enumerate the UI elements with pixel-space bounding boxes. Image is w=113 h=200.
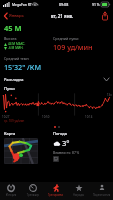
staticText: 10:14 xyxy=(85,115,93,119)
staticText: Тренажер xyxy=(22,193,44,197)
staticText: ср. 109 уд/мин xyxy=(4,119,25,123)
staticText: 45 М xyxy=(4,23,22,33)
button[interactable]: Карта маршрута xyxy=(4,138,38,164)
staticText: Награды xyxy=(67,193,90,197)
staticText: 10:27 xyxy=(2,115,10,119)
staticText: Раскладка xyxy=(4,77,24,82)
staticText: История xyxy=(0,193,22,197)
button[interactable]: Награды xyxy=(67,182,90,200)
staticText: Карта xyxy=(4,131,16,136)
staticText: 13x xyxy=(107,93,112,97)
staticText: 91 % xyxy=(92,2,100,7)
staticText: 15'32" /КМ xyxy=(4,62,42,72)
staticText: вт, 21 янв. xyxy=(51,13,74,19)
staticText: Пульс xyxy=(4,86,16,91)
staticText: 109 уд/мин xyxy=(53,42,93,52)
staticText: Январь xyxy=(9,13,24,19)
staticText: Высота xyxy=(4,36,17,41)
staticText: Средний пульс xyxy=(53,36,79,41)
button[interactable]: Январь xyxy=(3,11,25,21)
staticText: -6 M MИН. xyxy=(8,46,24,50)
button[interactable]: Поделиться xyxy=(100,11,110,21)
button[interactable]: Погодные данные xyxy=(53,156,59,162)
button[interactable]: История xyxy=(0,182,22,200)
staticText: Влажность: 87 % xyxy=(53,150,80,154)
staticText: 44 M MAKC. xyxy=(8,42,26,46)
staticText: 10:50 xyxy=(42,115,50,119)
staticText: MegaFon RT xyxy=(12,2,32,7)
button[interactable]: Раскладка xyxy=(0,74,113,84)
staticText: Средний темп xyxy=(4,56,29,61)
staticText: 09:08 xyxy=(59,2,69,7)
staticText: 3° xyxy=(62,138,70,148)
staticText: Погода xyxy=(53,131,67,136)
button[interactable]: Тренировки xyxy=(44,182,67,200)
staticText: Подключения xyxy=(90,193,113,197)
button[interactable]: Тренажер xyxy=(22,182,44,200)
button[interactable]: Подключения xyxy=(90,182,113,200)
staticText: Тренировки xyxy=(44,193,67,197)
